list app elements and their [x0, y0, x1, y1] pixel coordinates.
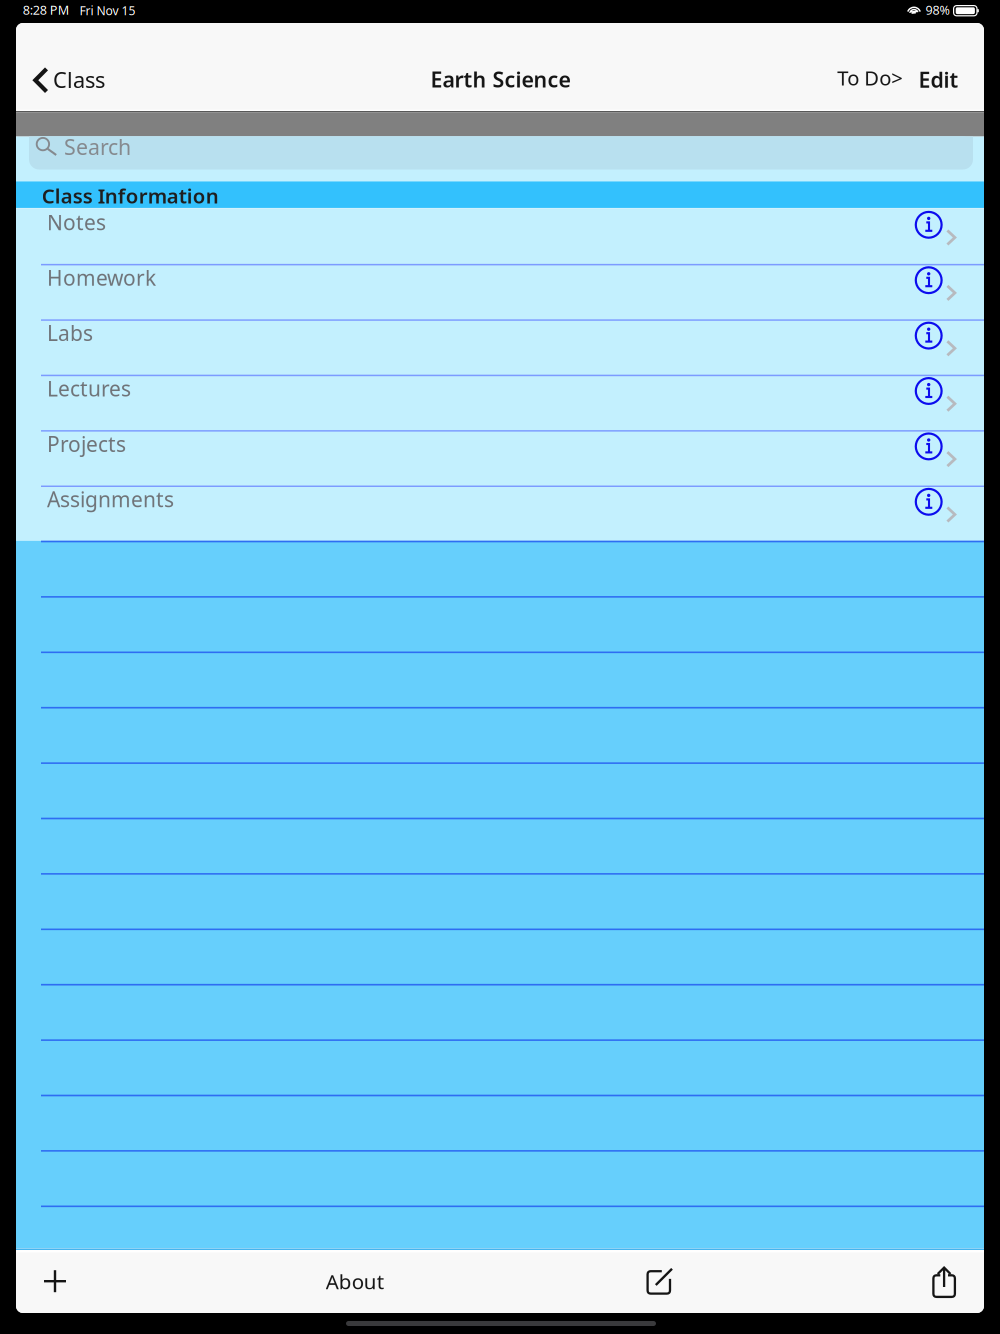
button[interactable]: More info about Notes: [912, 208, 946, 242]
staticText: Edit: [919, 65, 959, 94]
staticText: Homework: [47, 263, 156, 292]
button[interactable]: Edit: [910, 57, 968, 101]
button[interactable]: Projects: [16, 430, 984, 485]
staticText: Earth Science: [430, 65, 570, 94]
button[interactable]: Compose: [623, 1248, 699, 1313]
staticText: Search: [64, 132, 131, 161]
button[interactable]: Class: [16, 23, 126, 111]
staticText: Notes: [47, 208, 106, 236]
button[interactable]: About: [295, 1249, 415, 1314]
staticText: Lectures: [47, 374, 131, 403]
button[interactable]: Assignments: [16, 485, 984, 541]
button[interactable]: More info about Projects: [912, 429, 946, 463]
staticText: Labs: [47, 319, 93, 347]
button[interactable]: Labs: [16, 319, 984, 375]
staticText: Class Information: [42, 182, 219, 209]
staticText: Fri Nov 15: [79, 2, 135, 19]
button[interactable]: To Do>: [830, 56, 910, 100]
button[interactable]: Notes: [16, 208, 984, 264]
staticText: About: [326, 1267, 384, 1295]
staticText: Projects: [47, 429, 126, 458]
button[interactable]: More info about Homework: [912, 263, 946, 297]
button[interactable]: More info about Lectures: [912, 374, 946, 408]
staticText: Class: [53, 65, 105, 94]
staticText: 8:28 PM: [23, 1, 69, 19]
button[interactable]: Share: [904, 1248, 980, 1313]
button[interactable]: Add: [16, 1248, 92, 1313]
button[interactable]: More info about Assignments: [912, 485, 946, 519]
staticText: Assignments: [47, 485, 174, 513]
staticText: To Do>: [837, 64, 903, 91]
staticText: 98%: [925, 1, 949, 18]
button[interactable]: Homework: [16, 264, 984, 319]
button[interactable]: Lectures: [16, 375, 984, 430]
button[interactable]: More info about Labs: [912, 319, 946, 353]
